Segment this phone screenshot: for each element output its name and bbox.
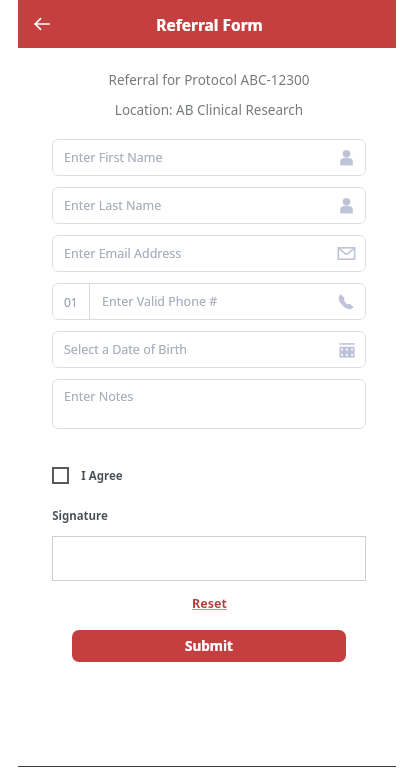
staticText: Signature bbox=[52, 508, 108, 524]
staticText: Submit bbox=[185, 637, 233, 655]
staticText: Select a Date of Birth bbox=[64, 341, 188, 358]
button[interactable]: Reset bbox=[184, 593, 235, 614]
staticText: Location: AB Clinical Research bbox=[0, 101, 418, 119]
other: Email bbox=[337, 244, 356, 263]
button[interactable]: Select a Date of Birth bbox=[52, 331, 366, 368]
other: Phone bbox=[337, 292, 356, 311]
staticText: Reset bbox=[192, 595, 227, 612]
button[interactable]: 01 bbox=[52, 283, 366, 320]
staticText: Enter First Name bbox=[64, 149, 163, 166]
button[interactable]: Enter First Name bbox=[52, 139, 366, 176]
staticText: Enter Email Address bbox=[64, 245, 182, 262]
other: Person bbox=[337, 196, 356, 215]
staticText: Enter Notes bbox=[64, 388, 134, 405]
staticText: Referral Form bbox=[156, 14, 263, 35]
other: Pick date bbox=[338, 341, 356, 359]
button[interactable]: Enter Email Address bbox=[52, 235, 366, 272]
staticText: Enter Last Name bbox=[64, 197, 162, 214]
staticText: Referral for Protocol ABC-12300 bbox=[0, 71, 418, 89]
button[interactable]: Enter Notes bbox=[52, 379, 366, 429]
button[interactable]: I Agree bbox=[52, 467, 129, 484]
button[interactable]: Submit bbox=[72, 630, 346, 662]
button[interactable]: Enter Last Name bbox=[52, 187, 366, 224]
button[interactable] bbox=[52, 536, 366, 581]
other: Person bbox=[337, 148, 356, 167]
staticText: Enter Valid Phone # bbox=[102, 293, 218, 310]
staticText: I Agree bbox=[81, 468, 123, 484]
button[interactable]: Back bbox=[18, 0, 66, 48]
staticText: 01 bbox=[64, 294, 78, 310]
